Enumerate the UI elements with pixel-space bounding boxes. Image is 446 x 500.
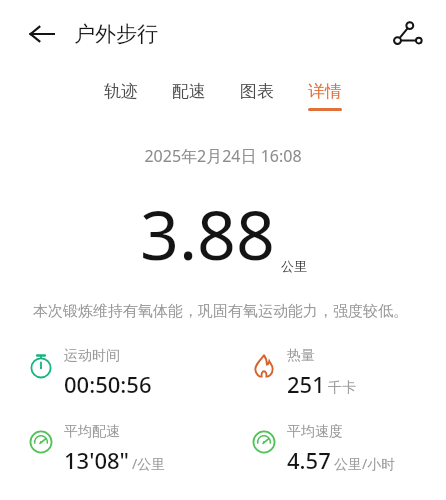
button[interactable]: 图表 xyxy=(234,79,280,113)
button[interactable]: 轨迹 xyxy=(98,79,144,113)
staticText: 13'08" xyxy=(64,445,129,475)
button[interactable]: Back xyxy=(18,10,66,58)
button[interactable]: Average pace xyxy=(0,423,223,475)
other: Duration xyxy=(28,353,54,379)
staticText: 平均配速 xyxy=(64,423,120,441)
button[interactable]: Share xyxy=(381,10,429,58)
button[interactable]: Duration xyxy=(0,347,223,399)
staticText: 千卡 xyxy=(328,379,356,397)
button[interactable]: Average speed xyxy=(223,423,446,475)
other: Average speed xyxy=(251,429,277,455)
staticText: /公里 xyxy=(132,454,166,473)
staticText: 图表 xyxy=(240,81,274,102)
staticText: 轨迹 xyxy=(104,81,138,102)
staticText: 公里/小时 xyxy=(334,454,396,473)
staticText: 详情 xyxy=(308,81,342,102)
other: Calories xyxy=(251,353,277,379)
staticText: 配速 xyxy=(172,81,206,102)
staticText: 平均速度 xyxy=(287,423,343,441)
staticText: 251 xyxy=(287,369,325,399)
other: Average pace xyxy=(28,429,54,455)
staticText: 公里 xyxy=(281,258,307,274)
staticText: 热量 xyxy=(287,347,315,365)
staticText: 本次锻炼维持有氧体能，巩固有氧运动能力，强度较低。 xyxy=(33,302,420,321)
staticText: 2025年2月24日 16:08 xyxy=(0,145,446,167)
staticText: 00:50:56 xyxy=(64,369,152,399)
button[interactable]: 详情 xyxy=(302,79,348,113)
staticText: 户外步行 xyxy=(74,21,158,47)
staticText: 4.57 xyxy=(287,445,331,475)
staticText: 3.88 xyxy=(140,187,275,280)
staticText: 运动时间 xyxy=(64,347,120,365)
button[interactable]: Calories xyxy=(223,347,446,399)
button[interactable]: 配速 xyxy=(166,79,212,113)
